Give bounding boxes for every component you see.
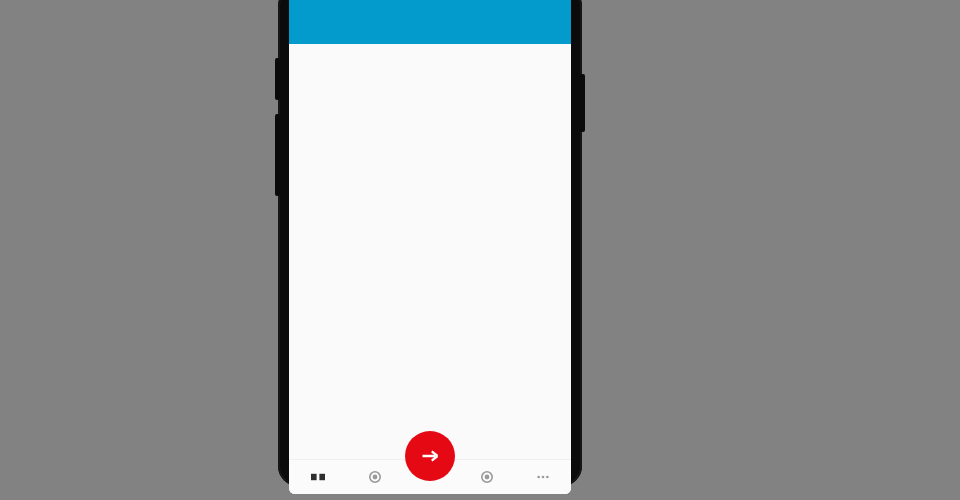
button[interactable]: More bbox=[515, 460, 571, 494]
button[interactable]: Send bbox=[405, 431, 455, 481]
button[interactable]: Explore bbox=[346, 460, 403, 494]
button[interactable]: Notifications bbox=[459, 460, 515, 494]
button[interactable]: Dashboard bbox=[289, 460, 346, 494]
